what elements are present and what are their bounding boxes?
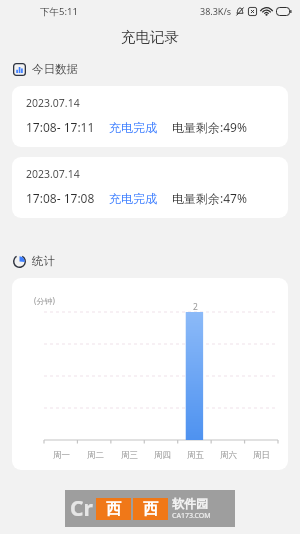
staticText: 38.3K/s — [200, 5, 232, 17]
staticText: 周一 — [53, 450, 70, 461]
staticText: Cr — [70, 494, 93, 523]
staticText: 2023.07.14 — [26, 167, 80, 181]
staticText: 电量剩余:47% — [172, 190, 247, 206]
staticText: 2023.07.14 — [26, 96, 80, 110]
staticText: 电量剩余:49% — [172, 119, 247, 135]
staticText: 统计 — [32, 254, 55, 268]
staticText: CA173.COM — [172, 511, 211, 521]
staticText: 周日 — [253, 450, 270, 461]
staticText: 周五 — [187, 450, 204, 461]
staticText: 17:08- 17:11 — [26, 119, 95, 135]
staticText: 下午5:11 — [40, 5, 78, 18]
staticText: 西 — [143, 500, 158, 519]
staticText: 周四 — [154, 450, 171, 461]
button[interactable]: 2023.07.14 — [12, 157, 288, 218]
staticText: 今日数据 — [32, 62, 78, 76]
staticText: 周三 — [121, 450, 138, 461]
staticText: 17:08- 17:08 — [26, 190, 95, 206]
other: Watermark — [65, 490, 235, 527]
staticText: 软件园 — [172, 496, 208, 511]
button[interactable]: 2023.07.14 — [12, 86, 288, 147]
staticText: (分钟) — [34, 295, 55, 306]
staticText: 充电记录 — [121, 28, 179, 46]
staticText: 西 — [106, 500, 121, 519]
staticText: 充电完成 — [109, 120, 157, 135]
staticText: 2 — [193, 301, 198, 313]
staticText: 周六 — [220, 450, 237, 461]
staticText: 周二 — [87, 450, 104, 461]
staticText: 充电完成 — [109, 191, 157, 206]
